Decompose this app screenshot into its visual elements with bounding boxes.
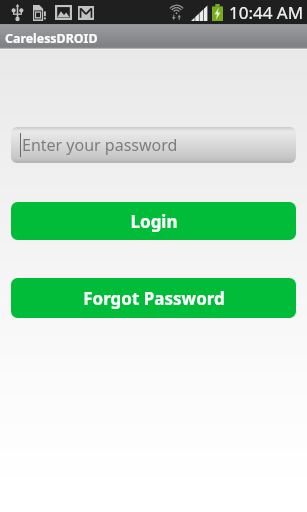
button[interactable]: Enter your password [11, 127, 296, 163]
staticText: 10:44 AM [229, 1, 304, 24]
button[interactable]: Forgot Password [11, 278, 296, 318]
staticText: Forgot Password [83, 287, 225, 310]
staticText: Login [130, 210, 178, 233]
staticText: Enter your password [22, 134, 178, 156]
button[interactable]: Login [11, 202, 296, 240]
staticText: CarelessDROID [5, 30, 98, 47]
